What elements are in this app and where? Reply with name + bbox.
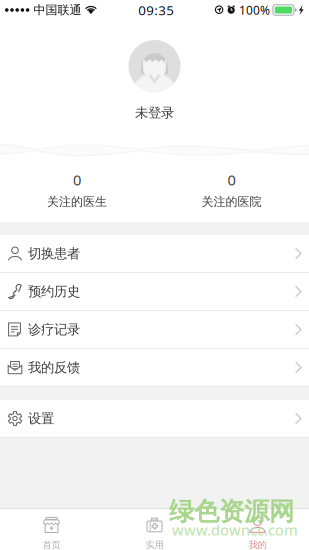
button[interactable]: 预约历史 bbox=[0, 273, 309, 311]
button[interactable]: 我的反馈 bbox=[0, 349, 309, 387]
button[interactable]: 切换患者 bbox=[0, 235, 309, 273]
button[interactable]: 设置 bbox=[0, 400, 309, 438]
staticText: 我的 bbox=[248, 539, 266, 550]
button[interactable]: 实用 bbox=[103, 509, 206, 550]
staticText: 我的反馈 bbox=[28, 359, 80, 376]
staticText: 设置 bbox=[28, 410, 54, 427]
staticText: 实用 bbox=[145, 539, 163, 550]
staticText: 切换患者 bbox=[28, 245, 80, 262]
staticText: 09:35 bbox=[138, 1, 174, 19]
staticText: 预约历史 bbox=[28, 283, 80, 300]
staticText: 100% bbox=[239, 2, 270, 18]
staticText: 首页 bbox=[42, 539, 60, 550]
staticText: 0 bbox=[73, 170, 81, 189]
button[interactable]: 首页 bbox=[0, 509, 103, 550]
staticText: 关注的医生 bbox=[47, 194, 107, 209]
staticText: 0 bbox=[227, 170, 235, 189]
staticText: 未登录 bbox=[135, 104, 174, 121]
staticText: 关注的医院 bbox=[201, 194, 261, 209]
staticText: 绿色资源网 bbox=[169, 496, 294, 527]
button[interactable]: 我的 bbox=[206, 509, 309, 550]
staticText: www.downcc.com bbox=[172, 520, 298, 539]
staticText: 诊疗记录 bbox=[28, 321, 80, 338]
button[interactable]: 诊疗记录 bbox=[0, 311, 309, 349]
staticText: 中国联通 bbox=[33, 3, 81, 17]
